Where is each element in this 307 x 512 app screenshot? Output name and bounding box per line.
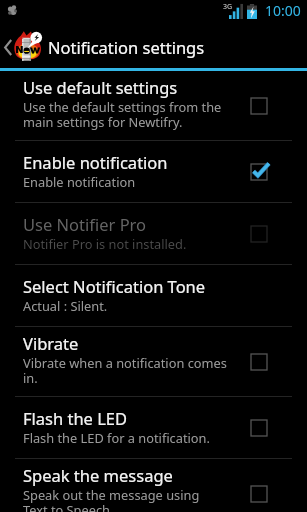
- button[interactable]: Toggle setting: [243, 412, 275, 444]
- staticText: Use the default settings from the main s…: [23, 98, 222, 131]
- button[interactable]: Toggle setting: [243, 478, 275, 510]
- staticText: Use default settings: [23, 76, 178, 98]
- button[interactable]: Vibrate: [0, 327, 307, 396]
- button[interactable]: Navigate up: [0, 22, 44, 68]
- staticText: Speak out the message using Text to Spee…: [23, 486, 200, 512]
- staticText: Speak the message: [23, 464, 173, 486]
- staticText: Enable notification: [23, 173, 136, 190]
- staticText: Vibrate when a notification comes in.: [23, 354, 227, 387]
- button[interactable]: Speak the message: [0, 459, 307, 512]
- button[interactable]: Select Notification Tone: [0, 265, 307, 326]
- button[interactable]: Toggle setting: [243, 156, 275, 188]
- button[interactable]: Toggle setting: [243, 218, 275, 250]
- staticText: Select Notification Tone: [23, 275, 206, 297]
- staticText: Notifier Pro is not installed.: [23, 235, 187, 252]
- staticText: Flash the LED for a notification.: [23, 429, 210, 446]
- button[interactable]: Use default settings: [0, 71, 307, 140]
- button[interactable]: Flash the LED: [0, 397, 307, 458]
- button[interactable]: Toggle setting: [243, 90, 275, 122]
- staticText: Notification settings: [48, 36, 205, 58]
- button[interactable]: Toggle setting: [243, 346, 275, 378]
- staticText: Vibrate: [23, 332, 79, 354]
- staticText: Enable notification: [23, 151, 168, 173]
- button[interactable]: Use Notifier Pro: [0, 203, 307, 264]
- staticText: Flash the LED: [23, 407, 128, 429]
- button[interactable]: Enable notification: [0, 141, 307, 202]
- staticText: 10:00: [265, 1, 301, 20]
- staticText: 3G: [223, 2, 233, 12]
- staticText: Actual : Silent.: [23, 297, 108, 314]
- staticText: Use Notifier Pro: [23, 213, 147, 235]
